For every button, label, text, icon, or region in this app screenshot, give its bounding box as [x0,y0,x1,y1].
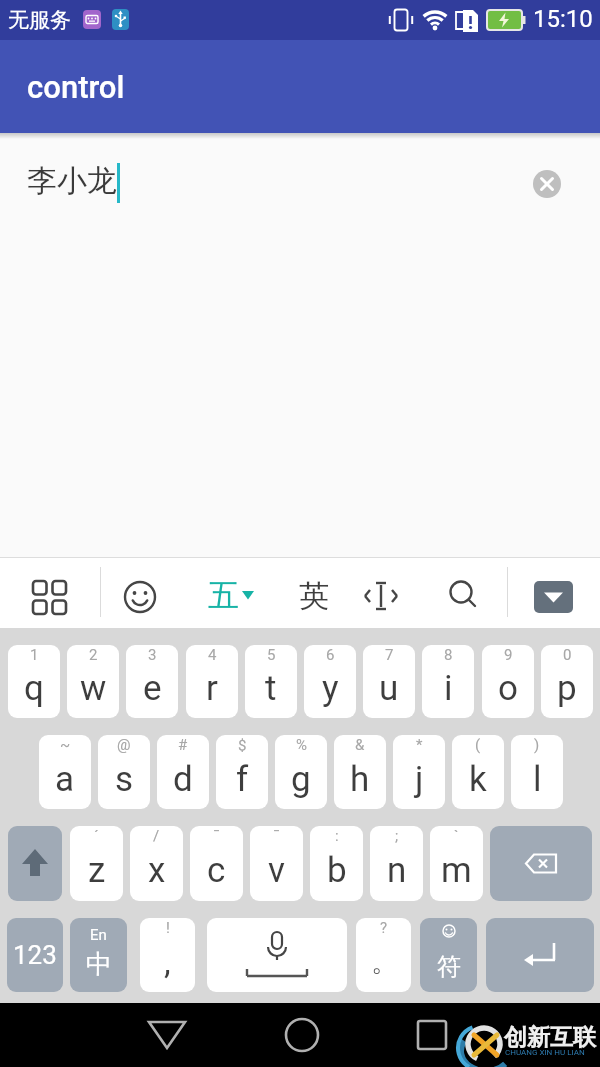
staticText: f [236,759,249,800]
button[interactable]: 6 [304,645,356,718]
button[interactable]: 3 [126,645,178,718]
staticText: @ [117,736,131,754]
button[interactable]: ! [140,918,195,992]
staticText: , [164,942,171,982]
button[interactable]: 英 [285,572,345,632]
staticText: ! [166,919,170,937]
button[interactable] [272,1015,332,1055]
staticText: 15:10 [533,5,593,33]
button[interactable] [490,826,592,901]
staticText: # [178,736,188,754]
staticText: / [153,827,160,845]
button[interactable]: 8 [422,645,474,718]
staticText: CHUANG XIN HU LIAN [505,1048,585,1057]
staticText: 6 [326,646,335,664]
staticText: 2 [89,646,98,664]
staticText: 。 [371,946,397,979]
button[interactable]: ` [430,826,483,901]
staticText: control [27,69,125,105]
staticText: g [291,759,311,800]
button[interactable]: 7 [363,645,415,718]
button[interactable]: # [157,735,209,809]
staticText: i [444,668,453,709]
button[interactable]: ? [356,918,411,992]
button[interactable]: 0 [541,645,593,718]
button[interactable]: 9 [482,645,534,718]
staticText: r [206,668,218,709]
button[interactable]: / [130,826,183,901]
staticText: 7 [385,646,394,664]
button[interactable]: ~ [39,735,91,809]
staticText: ; [395,827,399,845]
staticText: ˉ [273,827,280,845]
staticText: w [80,668,107,709]
staticText: ? [380,919,388,937]
button[interactable] [26,581,72,621]
button[interactable] [533,170,561,198]
staticText: x [148,850,166,891]
button[interactable]: En [70,918,127,992]
staticText: ´ [94,827,99,845]
button[interactable]: ´ [70,826,123,901]
staticText: ( [475,736,481,754]
button[interactable] [402,1015,462,1055]
staticText: 创新互联 [504,1023,596,1052]
button[interactable]: 五 [195,572,265,632]
staticText: & [355,736,365,754]
staticText: a [55,759,75,800]
staticText: $ [238,736,247,754]
button[interactable] [358,576,404,616]
staticText: c [207,850,226,891]
button[interactable]: % [275,735,327,809]
staticText: l [533,759,542,800]
staticText: z [88,850,106,891]
button[interactable] [486,918,594,992]
staticText: d [173,759,193,800]
button[interactable] [117,577,163,617]
button[interactable]: 1 [8,645,60,718]
staticText: 123 [13,940,57,970]
button[interactable] [207,918,347,992]
button[interactable]: ˉ [190,826,243,901]
staticText: ~ [60,736,71,754]
staticText: ˉ [213,827,220,845]
button[interactable] [440,576,486,616]
button[interactable]: : [310,826,363,901]
button[interactable]: * [393,735,445,809]
button[interactable]: $ [216,735,268,809]
staticText: k [469,759,487,800]
button[interactable] [534,581,573,613]
button[interactable]: 符 [420,918,477,992]
button[interactable]: 5 [245,645,297,718]
staticText: 4 [208,646,217,664]
staticText: v [268,850,285,891]
button[interactable]: 2 [67,645,119,718]
button[interactable]: ( [452,735,504,809]
button[interactable] [137,1015,197,1055]
staticText: 8 [444,646,453,664]
staticText: 1 [30,646,39,664]
staticText: 符 [437,952,461,982]
button[interactable] [8,826,62,901]
button[interactable]: @ [98,735,150,809]
staticText: h [350,759,370,800]
staticText: u [379,668,399,709]
staticText: * [416,736,423,754]
staticText: % [296,736,307,754]
staticText: ) [534,736,540,754]
staticText: q [24,668,44,709]
staticText: e [143,668,162,709]
button[interactable]: & [334,735,386,809]
staticText: 李小龙 [27,162,117,200]
button[interactable]: ; [370,826,423,901]
staticText: o [498,668,518,709]
button[interactable]: 4 [186,645,238,718]
staticText: 9 [504,646,513,664]
staticText: m [441,850,472,891]
staticText: p [557,668,577,709]
button[interactable]: ˉ [250,826,303,901]
button[interactable]: ) [511,735,563,809]
staticText: 英 [299,577,329,615]
staticText: j [415,759,424,800]
button[interactable]: 123 [7,918,63,992]
